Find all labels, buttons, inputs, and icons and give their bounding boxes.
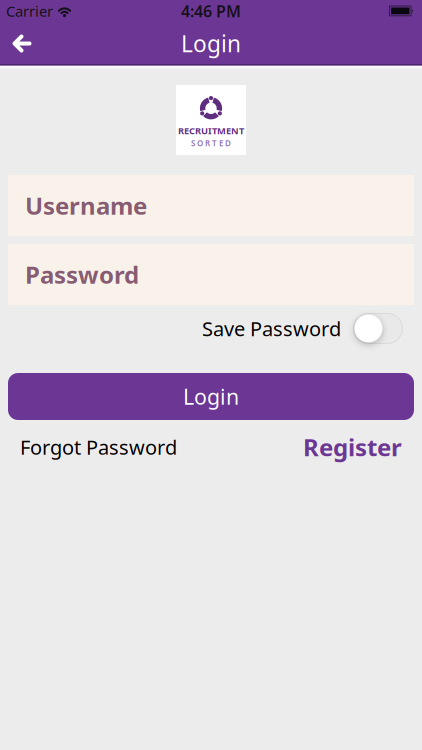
button[interactable]: Register [303,431,402,463]
staticText: S O R T E D [191,138,231,148]
button[interactable]: Password [0,244,422,305]
button[interactable]: Save Password [353,313,403,344]
staticText: Register [303,431,402,463]
staticText: Username [25,190,147,221]
staticText: Password [25,259,139,290]
staticText: Carrier [6,1,53,21]
staticText: 4:46 PM [181,0,241,22]
staticText: Forgot Password [20,434,177,460]
button[interactable]: Forgot Password [20,434,177,460]
staticText: Save Password [202,315,341,342]
staticText: RECRUITMENT [178,124,244,137]
staticText: Login [183,382,239,411]
button[interactable]: Login [0,373,422,420]
button[interactable]: Username [0,175,422,236]
staticText: Login [181,28,241,58]
button[interactable]: Back [0,21,32,63]
